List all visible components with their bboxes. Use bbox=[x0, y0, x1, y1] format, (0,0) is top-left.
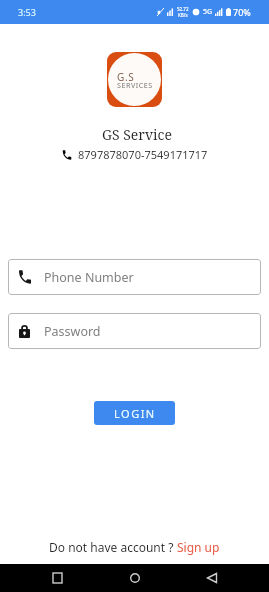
button[interactable]: LOGIN bbox=[94, 401, 175, 425]
staticText: GS Service bbox=[102, 125, 172, 144]
staticText: KB/s bbox=[178, 12, 188, 18]
staticText: Sign up bbox=[177, 539, 220, 555]
staticText: G.S bbox=[117, 70, 135, 84]
staticText: 52.72 bbox=[177, 6, 189, 12]
staticText: Do not have account ? bbox=[49, 539, 177, 555]
button[interactable]: Password bbox=[8, 313, 261, 349]
button[interactable]: Phone Number bbox=[8, 259, 261, 295]
staticText: 5G bbox=[203, 7, 213, 17]
staticText: 8797878070-7549171717 bbox=[78, 147, 208, 162]
button[interactable]: Home bbox=[115, 564, 155, 592]
staticText: Password bbox=[44, 323, 101, 340]
staticText: SERVICES bbox=[117, 80, 153, 90]
button[interactable]: Recents bbox=[37, 564, 77, 592]
staticText: 3:53 bbox=[18, 6, 36, 18]
button[interactable]: Sign up bbox=[177, 539, 220, 555]
button[interactable]: Back bbox=[192, 564, 232, 592]
staticText: LOGIN bbox=[114, 406, 156, 421]
staticText: 70% bbox=[233, 6, 251, 18]
staticText: Phone Number bbox=[44, 269, 134, 286]
